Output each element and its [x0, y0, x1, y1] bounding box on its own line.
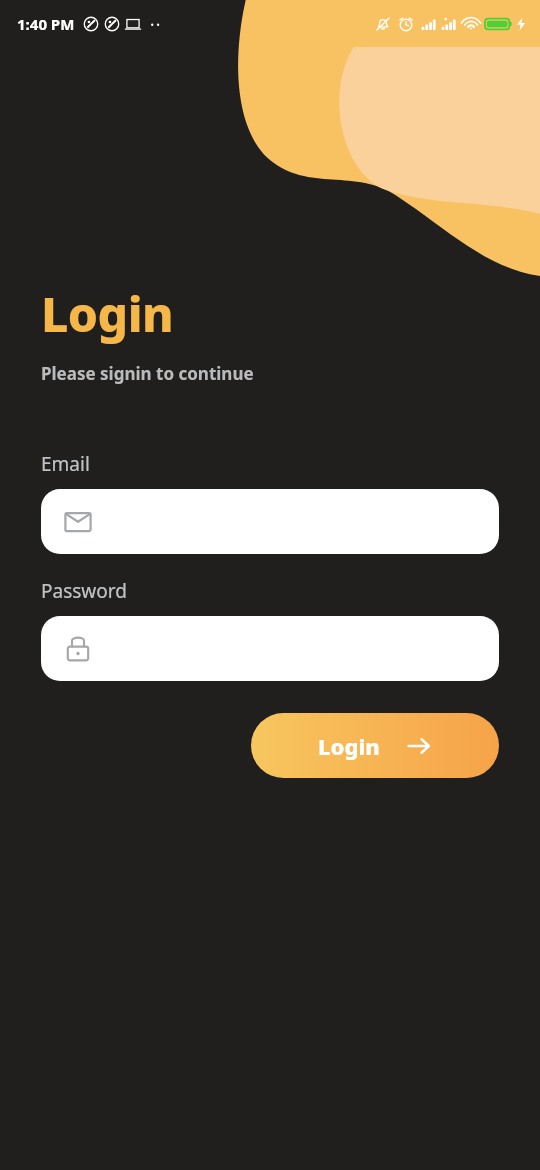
button[interactable]: Email — [41, 489, 499, 554]
staticText: Please signin to continue — [41, 362, 254, 385]
other: Password — [63, 634, 93, 664]
button[interactable]: Password — [41, 616, 499, 681]
other: Login — [406, 733, 432, 759]
staticText: Email — [41, 451, 90, 477]
staticText: 1:40 PM — [17, 14, 75, 34]
button[interactable]: Login — [251, 713, 499, 778]
staticText: Login — [41, 281, 174, 346]
staticText: Login — [318, 731, 380, 761]
staticText: Password — [41, 578, 127, 604]
other: Email — [63, 507, 93, 537]
